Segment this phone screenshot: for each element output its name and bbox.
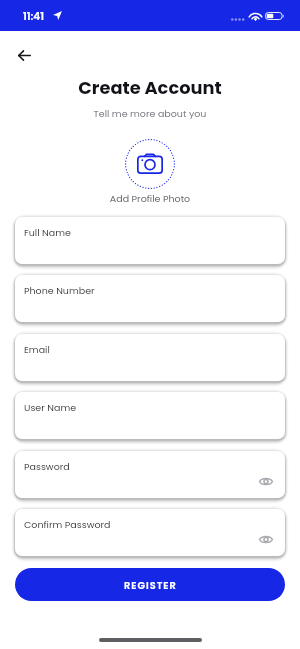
staticText: User Name bbox=[24, 401, 77, 414]
staticText: Phone Number bbox=[24, 284, 95, 297]
button[interactable]: Full Name bbox=[15, 217, 285, 264]
button[interactable]: Email bbox=[15, 334, 285, 381]
staticText: REGISTER bbox=[124, 579, 177, 593]
staticText: Password bbox=[24, 460, 70, 473]
button[interactable]: Phone Number bbox=[15, 275, 285, 322]
button[interactable]: Add Profile Photo bbox=[125, 139, 175, 189]
button[interactable]: Password bbox=[15, 451, 285, 498]
button[interactable]: Show password bbox=[258, 531, 274, 547]
staticText: Confirm Password bbox=[24, 518, 111, 531]
button[interactable]: REGISTER bbox=[15, 568, 285, 601]
button[interactable]: User Name bbox=[15, 392, 285, 439]
button[interactable]: Confirm Password bbox=[15, 509, 285, 556]
staticText: 11:41 bbox=[23, 9, 45, 24]
staticText: Email bbox=[24, 343, 50, 356]
staticText: Add Profile Photo bbox=[0, 192, 300, 205]
staticText: Create Account bbox=[0, 75, 300, 100]
staticText: Tell me more about you bbox=[0, 107, 300, 120]
staticText: Full Name bbox=[24, 226, 71, 239]
button[interactable]: Show password bbox=[258, 473, 274, 489]
button[interactable]: Back bbox=[9, 40, 40, 71]
